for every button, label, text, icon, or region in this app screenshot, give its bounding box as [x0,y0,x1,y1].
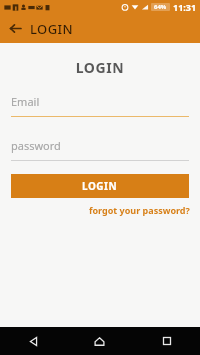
button[interactable]: Email [11,94,189,117]
button[interactable]: Back [0,14,30,43]
button[interactable]: Recent apps [133,327,200,355]
button[interactable]: Home [66,327,133,355]
button[interactable]: password [11,138,189,161]
staticText: password [11,138,61,153]
staticText: 64% [154,3,167,11]
staticText: 11:31 [173,1,197,13]
staticText: Email [11,94,40,109]
staticText: LOGIN [0,58,200,77]
staticText: LOGIN [30,20,74,38]
staticText: LOGIN [82,179,118,193]
button[interactable]: forgot your password? [89,204,190,216]
button[interactable]: LOGIN [11,174,189,198]
button[interactable]: Back [0,327,66,355]
